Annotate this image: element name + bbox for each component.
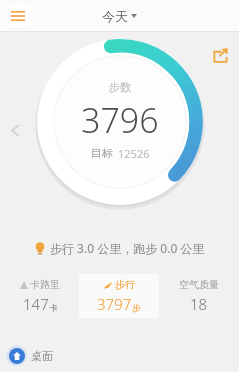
staticText: 今天 — [102, 8, 128, 24]
button[interactable]: 步数 — [34, 36, 206, 208]
staticText: 步 — [132, 302, 141, 313]
staticText: 12526 — [118, 146, 150, 161]
button[interactable]: 桌面 — [6, 345, 53, 366]
staticText: 147 — [23, 294, 49, 314]
button[interactable]: 今天 — [102, 8, 137, 24]
staticText: 3797 — [97, 294, 132, 314]
button[interactable]: Previous day — [5, 120, 25, 140]
button[interactable]: 步行 — [79, 274, 159, 318]
button[interactable]: Menu — [7, 5, 29, 27]
staticText: 卡 — [49, 302, 58, 313]
button[interactable]: 卡路里 — [0, 274, 79, 318]
staticText: 桌面 — [31, 349, 53, 363]
staticText: 18 — [190, 294, 208, 314]
staticText: 步数 — [109, 80, 131, 94]
button[interactable]: Share — [209, 44, 231, 66]
button[interactable]: 步行 3.0 公里，跑步 0.0 公里 — [0, 240, 239, 256]
staticText: 空气质量 — [179, 278, 219, 291]
staticText: 3796 — [81, 97, 159, 143]
button[interactable]: 空气质量 — [159, 274, 239, 318]
staticText: 步行 3.0 公里，跑步 0.0 公里 — [50, 240, 205, 256]
staticText: 步行 — [115, 278, 135, 291]
staticText: 卡路里 — [30, 278, 60, 291]
staticText: 目标 — [91, 146, 113, 160]
